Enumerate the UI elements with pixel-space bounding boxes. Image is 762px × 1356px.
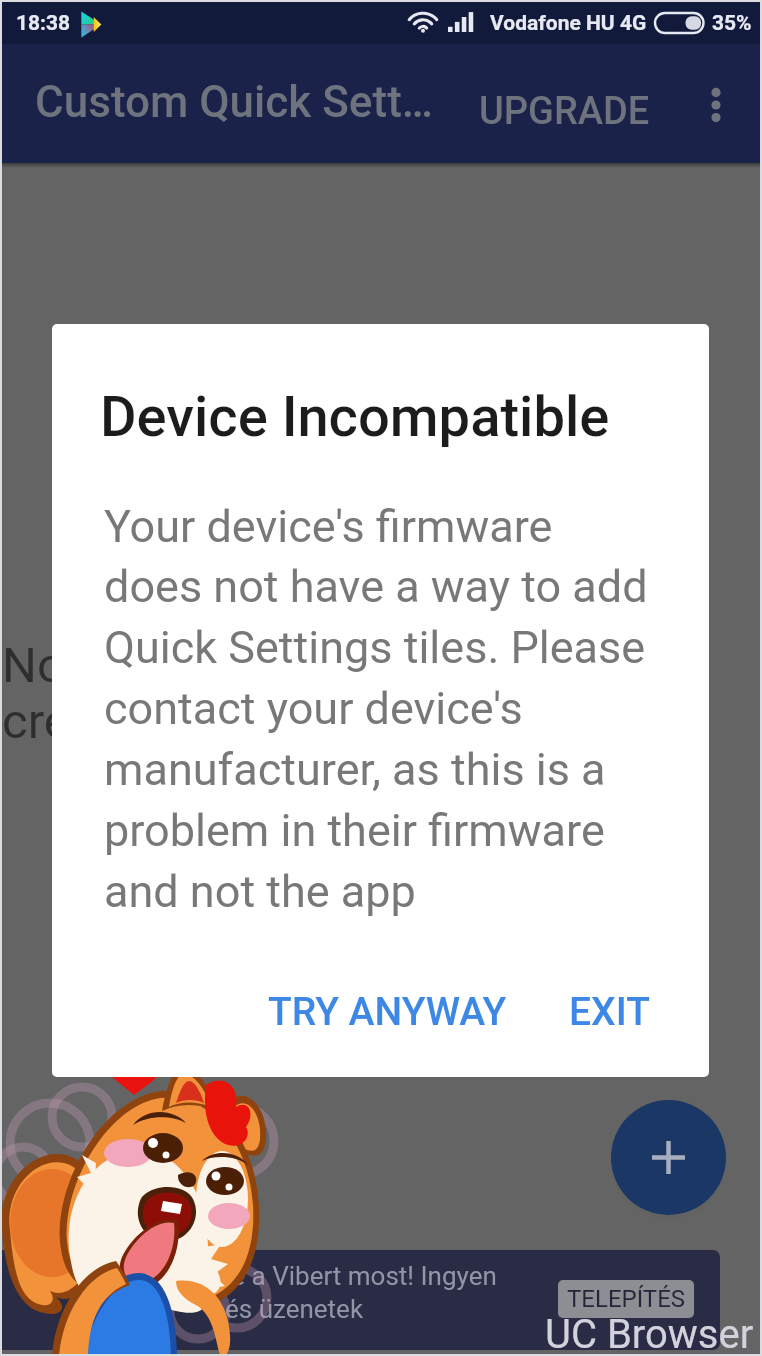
staticText: TELEPÍTÉS [567,1285,686,1313]
staticText: le a Vibert most! Ingyen [225,1261,497,1291]
button[interactable]: TRY ANYWAY [252,975,523,1049]
staticText: UC Browser [545,1311,754,1356]
staticText: Vodafone HU 4G [490,11,647,36]
button[interactable]: More options [688,77,744,133]
staticText: TRY ANYWAY [268,989,507,1035]
staticText: Your device's firmware does not have a w… [104,500,652,918]
staticText: és üzenetek [225,1294,364,1324]
staticText: EXIT [569,989,650,1035]
staticText: No tiles created [2,637,169,750]
button[interactable]: UPGRADE [461,67,668,156]
staticText: Custom Quick Settings [35,76,435,128]
button[interactable]: TELEPÍTÉS [558,1280,694,1318]
staticText: 35% [712,11,752,36]
button[interactable] [0,1250,720,1350]
button[interactable]: Add tile [611,1100,726,1215]
button[interactable]: EXIT [553,975,666,1049]
staticText: Device Incompatible [100,384,610,450]
staticText: UPGRADE [479,89,650,134]
staticText: 18:38 [16,11,71,36]
